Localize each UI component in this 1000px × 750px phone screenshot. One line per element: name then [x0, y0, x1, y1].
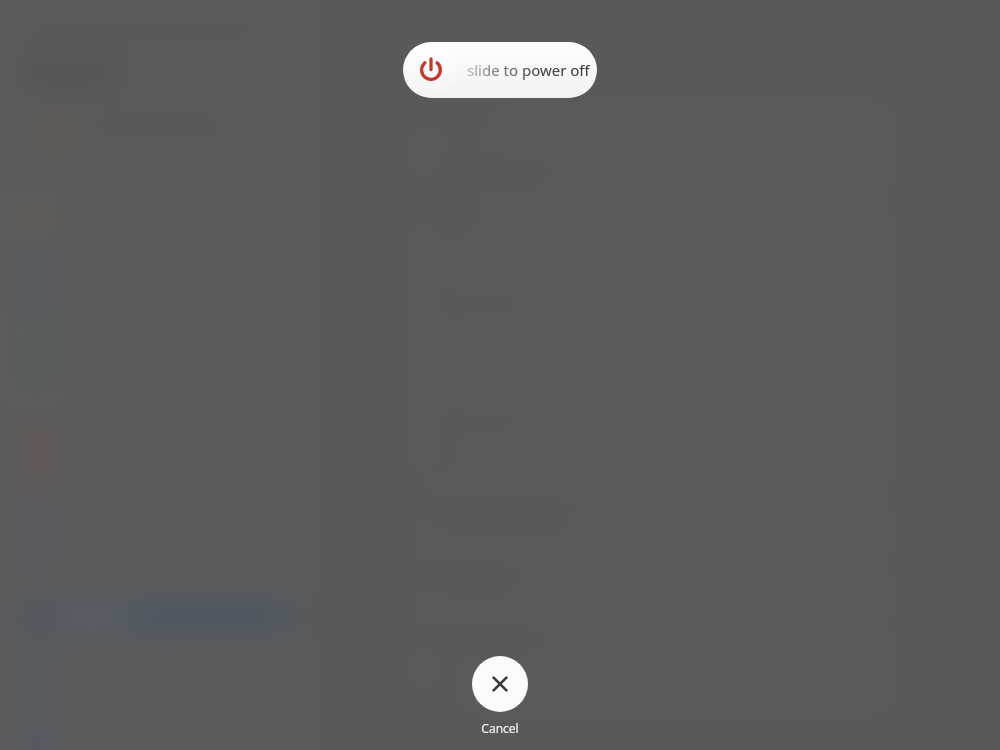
staticText: slide to power off: [467, 60, 590, 80]
button[interactable]: Cancel: [464, 656, 536, 736]
other: Cancel: [472, 656, 528, 712]
other: Power off: [405, 44, 457, 96]
button[interactable]: Power off: [403, 42, 597, 98]
staticText: Cancel: [481, 720, 519, 736]
